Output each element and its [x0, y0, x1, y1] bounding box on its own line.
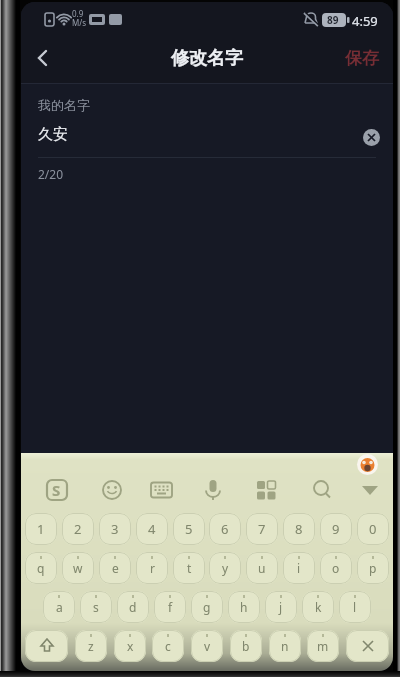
button[interactable]: p	[357, 552, 389, 584]
staticText: 久安	[38, 125, 68, 144]
staticText: 7	[258, 520, 266, 538]
staticText: l	[353, 599, 357, 615]
button[interactable]: n	[269, 630, 301, 662]
button[interactable]: 1	[25, 513, 57, 545]
staticText: h	[240, 599, 248, 615]
button[interactable]: e	[99, 552, 131, 584]
staticText: v	[204, 638, 211, 654]
staticText: 3	[111, 520, 119, 538]
staticText: 0	[369, 520, 377, 538]
staticText: 1	[37, 520, 45, 538]
button[interactable]: x	[114, 630, 146, 662]
staticText: c	[165, 638, 171, 654]
button[interactable]: d	[117, 591, 149, 623]
staticText: t	[187, 560, 192, 576]
staticText: a	[56, 599, 63, 615]
button[interactable]: 9	[320, 513, 352, 545]
button[interactable]	[363, 129, 380, 146]
staticText: 89	[327, 13, 339, 27]
button[interactable]: 2	[62, 513, 94, 545]
button[interactable]: t	[173, 552, 205, 584]
staticText: 2	[74, 520, 82, 538]
button[interactable]	[346, 630, 389, 662]
staticText: k	[315, 599, 322, 615]
staticText: y	[222, 560, 229, 576]
staticText: 修改名字	[171, 47, 243, 70]
staticText: 保存	[345, 48, 379, 69]
button[interactable]: s	[80, 591, 112, 623]
button[interactable]: h	[228, 591, 260, 623]
staticText: s	[93, 599, 99, 615]
staticText: x	[127, 638, 134, 654]
button[interactable]: j	[265, 591, 297, 623]
staticText: w	[73, 560, 83, 576]
staticText: u	[258, 560, 266, 576]
button[interactable]: a	[43, 591, 75, 623]
button[interactable]: 3	[99, 513, 131, 545]
button[interactable]: q	[25, 552, 57, 584]
button[interactable]: 4	[136, 513, 168, 545]
staticText: m	[317, 638, 329, 654]
staticText: j	[279, 599, 283, 615]
button[interactable]: b	[230, 630, 262, 662]
button[interactable]: z	[75, 630, 107, 662]
staticText: r	[150, 560, 155, 576]
button[interactable]: 8	[283, 513, 315, 545]
staticText: g	[203, 599, 211, 615]
staticText: z	[88, 638, 94, 654]
staticText: 4:59	[352, 12, 378, 30]
staticText: o	[332, 560, 340, 576]
staticText: 9	[332, 520, 340, 538]
button[interactable]: m	[307, 630, 339, 662]
staticText: e	[112, 560, 119, 576]
staticText: 0.9	[72, 8, 84, 19]
button[interactable]: u	[246, 552, 278, 584]
staticText: M/s	[72, 17, 87, 28]
button[interactable]: v	[191, 630, 223, 662]
button[interactable]: 5	[173, 513, 205, 545]
button[interactable]: o	[320, 552, 352, 584]
button[interactable]: i	[283, 552, 315, 584]
button[interactable]	[25, 630, 68, 662]
button[interactable]	[21, 32, 65, 84]
staticText: S	[52, 480, 61, 500]
button[interactable]: 0	[357, 513, 389, 545]
staticText: 6	[221, 520, 229, 538]
button[interactable]: w	[62, 552, 94, 584]
staticText: f	[168, 599, 173, 615]
button[interactable]: f	[154, 591, 186, 623]
staticText: 5	[185, 520, 193, 538]
staticText: 8	[295, 520, 303, 538]
button[interactable]: 6	[209, 513, 241, 545]
button[interactable]: g	[191, 591, 223, 623]
staticText: 4	[148, 520, 156, 538]
staticText: d	[129, 599, 137, 615]
button[interactable]: l	[339, 591, 371, 623]
button[interactable]: y	[209, 552, 241, 584]
button[interactable]: 7	[246, 513, 278, 545]
staticText: q	[37, 560, 45, 576]
staticText: 2/20	[38, 166, 64, 182]
button[interactable]: c	[152, 630, 184, 662]
staticText: n	[281, 638, 289, 654]
button[interactable]: k	[302, 591, 334, 623]
staticText: p	[369, 560, 377, 576]
button[interactable]: r	[136, 552, 168, 584]
staticText: b	[242, 638, 250, 654]
staticText: 我的名字	[38, 97, 90, 113]
button[interactable]: 保存	[345, 48, 379, 69]
staticText: i	[297, 560, 301, 576]
